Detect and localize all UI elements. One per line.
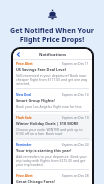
button[interactable]: Back — [15, 51, 22, 58]
staticText: Reminder — [16, 143, 32, 147]
other: Notification bell — [47, 9, 58, 20]
staticText: Choose your code: WINTER and pick up to … — [16, 127, 89, 136]
staticText: Winter Holiday Deals | $18 MORE — [16, 121, 79, 126]
button[interactable]: Flash Sale — [13, 114, 92, 141]
staticText: Book your Los Angeles flight now for les… — [16, 104, 83, 109]
staticText: Add reminders to your departure. Book yo… — [16, 154, 89, 167]
staticText: Your trip is starting this year! — [16, 148, 72, 153]
staticText: Still interested in your departure? Book… — [16, 73, 89, 86]
staticText: New Deal — [16, 93, 32, 97]
staticText: Expires on Dec 24 — [62, 143, 89, 147]
staticText: Expires on Dec 11 — [62, 62, 89, 66]
staticText: Price Alert — [16, 174, 33, 178]
staticText: Flash Sale — [16, 116, 32, 120]
staticText: US Savings Fare Deal Level — [16, 67, 66, 72]
staticText: Expires on Dec 19 — [62, 116, 89, 120]
button[interactable]: Reminder — [13, 141, 92, 172]
staticText: Expires on Dec 14 — [62, 93, 89, 97]
staticText: Price Alert — [16, 62, 33, 66]
staticText: Get Notified When Your Flight Price Drop… — [10, 26, 94, 44]
staticText: Smart Group Flights! — [16, 98, 55, 103]
staticText: Expires on Dec 28 — [62, 174, 89, 178]
staticText: Great Chicago Fares! — [16, 179, 55, 184]
button[interactable]: New Deal — [13, 91, 92, 114]
button[interactable]: Price Alert — [13, 60, 92, 91]
button[interactable]: Price Alert — [13, 172, 92, 184]
staticText: Notifications — [39, 52, 67, 58]
